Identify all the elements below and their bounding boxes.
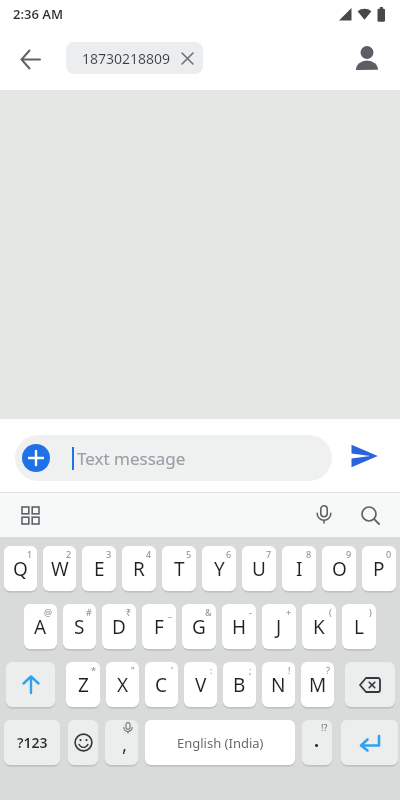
staticText: Text message bbox=[77, 447, 186, 470]
button[interactable]: V bbox=[184, 662, 217, 707]
staticText: 8 bbox=[306, 548, 312, 560]
staticText: * bbox=[91, 664, 96, 676]
button[interactable] bbox=[10, 39, 50, 79]
button[interactable]: R bbox=[122, 546, 156, 591]
staticText: : bbox=[210, 664, 213, 676]
staticText: B bbox=[233, 672, 246, 698]
button[interactable]: K bbox=[302, 604, 336, 649]
staticText: M bbox=[309, 672, 327, 698]
staticText: V bbox=[195, 672, 207, 698]
button[interactable]: M bbox=[301, 662, 334, 707]
button[interactable]: N bbox=[262, 662, 295, 707]
button[interactable] bbox=[341, 720, 398, 765]
staticText: F bbox=[154, 614, 164, 640]
button[interactable] bbox=[344, 436, 384, 476]
button[interactable] bbox=[6, 662, 55, 707]
button[interactable]: B bbox=[223, 662, 256, 707]
staticText: 2 bbox=[66, 548, 72, 560]
staticText: Y bbox=[214, 556, 225, 582]
staticText: " bbox=[131, 664, 135, 676]
button[interactable] bbox=[347, 39, 387, 79]
button[interactable]: F bbox=[142, 604, 176, 649]
staticText: K bbox=[313, 614, 325, 640]
staticText: , bbox=[122, 731, 128, 757]
button[interactable] bbox=[68, 720, 98, 765]
button[interactable] bbox=[345, 662, 395, 707]
staticText: D bbox=[112, 614, 126, 640]
button[interactable]: Q bbox=[4, 546, 37, 591]
staticText: Z bbox=[78, 672, 89, 698]
staticText: ?123 bbox=[17, 733, 48, 752]
staticText: P bbox=[373, 556, 385, 582]
staticText: X bbox=[117, 672, 129, 698]
button[interactable]: Y bbox=[202, 546, 236, 591]
staticText: S bbox=[74, 614, 85, 640]
button[interactable] bbox=[14, 499, 46, 531]
staticText: I bbox=[296, 556, 303, 582]
staticText: - bbox=[249, 606, 252, 618]
staticText: 3 bbox=[106, 548, 112, 560]
staticText: 18730218809 bbox=[82, 49, 171, 68]
staticText: & bbox=[205, 606, 212, 618]
staticText: . bbox=[314, 728, 320, 753]
button[interactable]: Z bbox=[66, 662, 100, 707]
button[interactable]: ?123 bbox=[4, 720, 60, 765]
staticText: G bbox=[192, 614, 206, 640]
staticText: 6 bbox=[226, 548, 232, 560]
button[interactable]: D bbox=[102, 604, 136, 649]
button[interactable] bbox=[22, 444, 50, 472]
staticText: W bbox=[51, 556, 69, 582]
button[interactable]: English (India) bbox=[145, 720, 295, 765]
staticText: L bbox=[354, 614, 364, 640]
staticText: ₹ bbox=[126, 606, 132, 618]
staticText: _ bbox=[168, 606, 172, 618]
button[interactable]: E bbox=[82, 546, 116, 591]
button[interactable]: C bbox=[145, 662, 178, 707]
staticText: 4 bbox=[146, 548, 152, 560]
button[interactable]: O bbox=[322, 546, 356, 591]
staticText: H bbox=[232, 614, 247, 640]
staticText: 1 bbox=[27, 548, 33, 560]
staticText: J bbox=[276, 614, 282, 640]
staticText: + bbox=[286, 606, 292, 618]
button[interactable]: G bbox=[182, 604, 216, 649]
staticText: ' bbox=[171, 664, 174, 676]
button[interactable]: S bbox=[63, 604, 96, 649]
staticText: A bbox=[34, 614, 47, 640]
staticText: T bbox=[174, 556, 185, 582]
button[interactable]: 18730218809 bbox=[66, 42, 203, 74]
staticText: 9 bbox=[346, 548, 352, 560]
button[interactable]: , bbox=[105, 720, 138, 765]
staticText: !? bbox=[321, 721, 328, 733]
staticText: N bbox=[271, 672, 286, 698]
staticText: 2:36 AM bbox=[13, 5, 64, 23]
button[interactable]: T bbox=[162, 546, 196, 591]
staticText: R bbox=[133, 556, 145, 582]
staticText: ( bbox=[329, 606, 332, 618]
button[interactable]: J bbox=[262, 604, 296, 649]
staticText: English (India) bbox=[177, 734, 264, 752]
button[interactable]: P bbox=[362, 546, 396, 591]
button[interactable]: H bbox=[222, 604, 256, 649]
staticText: ? bbox=[326, 664, 330, 676]
staticText: C bbox=[155, 672, 168, 698]
staticText: ) bbox=[369, 606, 372, 618]
staticText: Q bbox=[13, 556, 28, 582]
button[interactable]: . bbox=[302, 720, 332, 765]
button[interactable]: X bbox=[106, 662, 139, 707]
button[interactable]: I bbox=[282, 546, 316, 591]
staticText: 7 bbox=[266, 548, 272, 560]
staticText: ! bbox=[288, 664, 291, 676]
button[interactable] bbox=[354, 499, 386, 531]
button[interactable]: A bbox=[24, 604, 57, 649]
staticText: 5 bbox=[186, 548, 192, 560]
button[interactable]: L bbox=[342, 604, 376, 649]
button[interactable] bbox=[308, 499, 340, 531]
staticText: U bbox=[252, 556, 266, 582]
button[interactable]: U bbox=[242, 546, 276, 591]
button[interactable]: Text message bbox=[15, 435, 332, 481]
staticText: @ bbox=[44, 606, 53, 618]
button[interactable]: W bbox=[43, 546, 76, 591]
staticText: O bbox=[332, 556, 347, 582]
staticText: 0 bbox=[386, 548, 392, 560]
